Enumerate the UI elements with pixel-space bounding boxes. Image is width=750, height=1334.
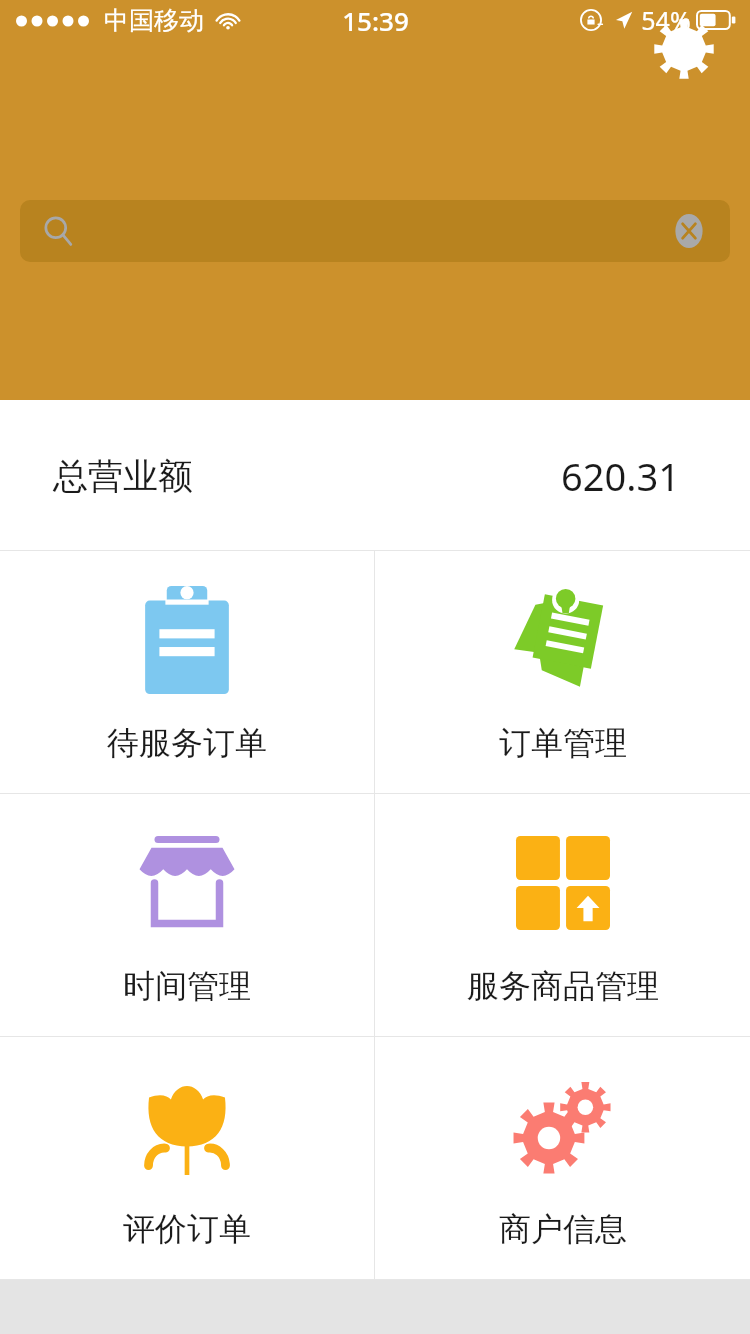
button[interactable]: Clear search — [20, 200, 730, 262]
staticText: 订单管理 — [499, 723, 627, 763]
staticText: 总营业额 — [53, 454, 193, 498]
staticText: 中国移动 — [104, 5, 204, 36]
button[interactable]: 总营业额 — [0, 400, 750, 551]
staticText: 商户信息 — [499, 1209, 627, 1249]
button[interactable]: Clear search — [672, 214, 706, 248]
staticText: 54% — [641, 3, 691, 37]
button[interactable]: Settings — [648, 13, 720, 85]
staticText: 评价订单 — [123, 1209, 251, 1249]
staticText: 时间管理 — [123, 966, 251, 1006]
button[interactable]: 商户信息 — [375, 1037, 750, 1280]
staticText: 待服务订单 — [107, 723, 267, 763]
button[interactable]: 订单管理 — [375, 551, 750, 794]
button[interactable]: 待服务订单 — [0, 551, 374, 794]
button[interactable]: 评价订单 — [0, 1037, 374, 1280]
button[interactable]: 时间管理 — [0, 794, 374, 1037]
staticText: 620.31 — [561, 450, 680, 502]
button[interactable]: 服务商品管理 — [375, 794, 750, 1037]
staticText: 服务商品管理 — [467, 966, 659, 1006]
staticText: 15:39 — [342, 3, 409, 38]
